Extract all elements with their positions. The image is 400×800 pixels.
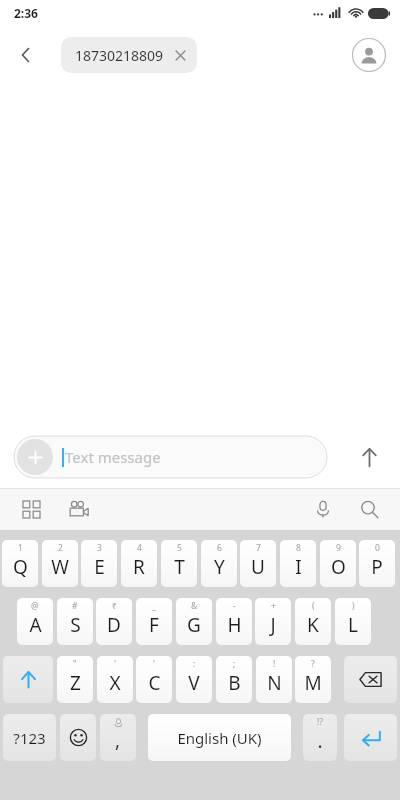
staticText: & [191, 600, 198, 612]
button[interactable]: 4 [121, 540, 157, 587]
staticText: C [148, 670, 161, 696]
staticText: " [73, 658, 77, 670]
button[interactable]: !? [303, 714, 337, 761]
button[interactable]: Video [64, 494, 94, 524]
staticText: E [94, 554, 105, 580]
button[interactable]: Enter [344, 714, 397, 761]
button[interactable]: _ [136, 598, 172, 645]
staticText: Text message [65, 447, 161, 467]
staticText: + [271, 600, 276, 612]
button[interactable]: Backspace [344, 656, 397, 703]
staticText: ?123 [13, 728, 46, 748]
button[interactable]: : [176, 656, 212, 703]
staticText: 8 [296, 542, 301, 554]
staticText: F [149, 612, 159, 638]
staticText: @ [31, 600, 39, 612]
staticText: 6 [217, 542, 222, 554]
staticText: English (UK) [177, 728, 262, 748]
button[interactable]: Back [8, 37, 44, 73]
staticText: , [115, 727, 121, 753]
staticText: B [228, 670, 241, 696]
button[interactable]: Emoji [60, 714, 96, 761]
staticText: ' [114, 658, 116, 670]
button[interactable]: 1 [2, 540, 38, 587]
staticText: ' [153, 658, 155, 670]
button[interactable]: ' [136, 656, 172, 703]
staticText: M [304, 670, 322, 696]
staticText: Z [70, 670, 81, 696]
staticText: 3 [97, 542, 102, 554]
button[interactable]: Voice input [308, 494, 338, 524]
staticText: Q [13, 554, 28, 580]
button[interactable]: English (UK) [148, 714, 291, 761]
staticText: V [188, 670, 200, 696]
staticText: 2:36 [14, 5, 38, 21]
staticText: ? [311, 658, 315, 670]
staticText: D [107, 612, 121, 638]
staticText: 7 [256, 542, 261, 554]
staticText: J [270, 612, 276, 638]
staticText: 4 [137, 542, 142, 554]
staticText: # [72, 600, 78, 612]
button[interactable]: @ [17, 598, 53, 645]
staticText: 18730218809 [75, 46, 164, 65]
staticText: N [267, 670, 282, 696]
button[interactable]: ' [97, 656, 133, 703]
button[interactable]: ? [295, 656, 331, 703]
staticText: ! [273, 658, 276, 670]
button[interactable]: ( [295, 598, 331, 645]
button[interactable]: Send [350, 438, 388, 476]
staticText: L [348, 612, 358, 638]
staticText: S [70, 612, 81, 638]
staticText: - [233, 600, 236, 612]
button[interactable]: # [57, 598, 93, 645]
button[interactable]: - [216, 598, 252, 645]
button[interactable]: 5 [161, 540, 197, 587]
button[interactable]: & [176, 598, 212, 645]
staticText: U [251, 554, 265, 580]
button[interactable]: Add attachment [17, 439, 53, 475]
staticText: 0 [375, 542, 380, 554]
staticText: 5 [177, 542, 182, 554]
button[interactable]: Keyboard apps [16, 494, 46, 524]
button[interactable]: 3 [81, 540, 117, 587]
staticText: . [317, 728, 323, 754]
button[interactable]: Search [354, 494, 384, 524]
staticText: R [133, 554, 145, 580]
staticText: K [307, 612, 319, 638]
button[interactable]: Add attachment [14, 436, 327, 478]
button[interactable]: 2 [42, 540, 78, 587]
staticText: _ [152, 600, 156, 612]
staticText: O [331, 554, 346, 580]
staticText: 9 [336, 542, 341, 554]
button[interactable]: ₹ [96, 598, 132, 645]
staticText: I [295, 554, 302, 580]
button[interactable]: Comma [100, 714, 136, 761]
button[interactable]: ) [335, 598, 371, 645]
staticText: 2 [58, 542, 63, 554]
staticText: G [187, 612, 201, 638]
button[interactable]: ; [216, 656, 252, 703]
button[interactable]: 8 [280, 540, 316, 587]
button[interactable]: + [255, 598, 291, 645]
button[interactable]: ! [256, 656, 292, 703]
staticText: ; [233, 658, 236, 670]
button[interactable]: 0 [359, 540, 395, 587]
staticText: W [51, 554, 69, 580]
button[interactable]: Shift [3, 656, 53, 703]
button[interactable]: ?123 [3, 714, 56, 761]
button[interactable]: 9 [320, 540, 356, 587]
staticText: P [371, 554, 383, 580]
button[interactable]: " [57, 656, 93, 703]
button[interactable]: 6 [201, 540, 237, 587]
staticText: !? [317, 716, 323, 728]
staticText: T [174, 554, 185, 580]
button[interactable]: 18730218809 [61, 37, 197, 73]
staticText: ( [312, 600, 315, 612]
staticText: H [227, 612, 242, 638]
staticText: : [193, 658, 196, 670]
button[interactable]: 7 [240, 540, 276, 587]
staticText: ₹ [112, 600, 117, 612]
staticText: ) [352, 600, 355, 612]
button[interactable]: Contact details [352, 38, 386, 72]
